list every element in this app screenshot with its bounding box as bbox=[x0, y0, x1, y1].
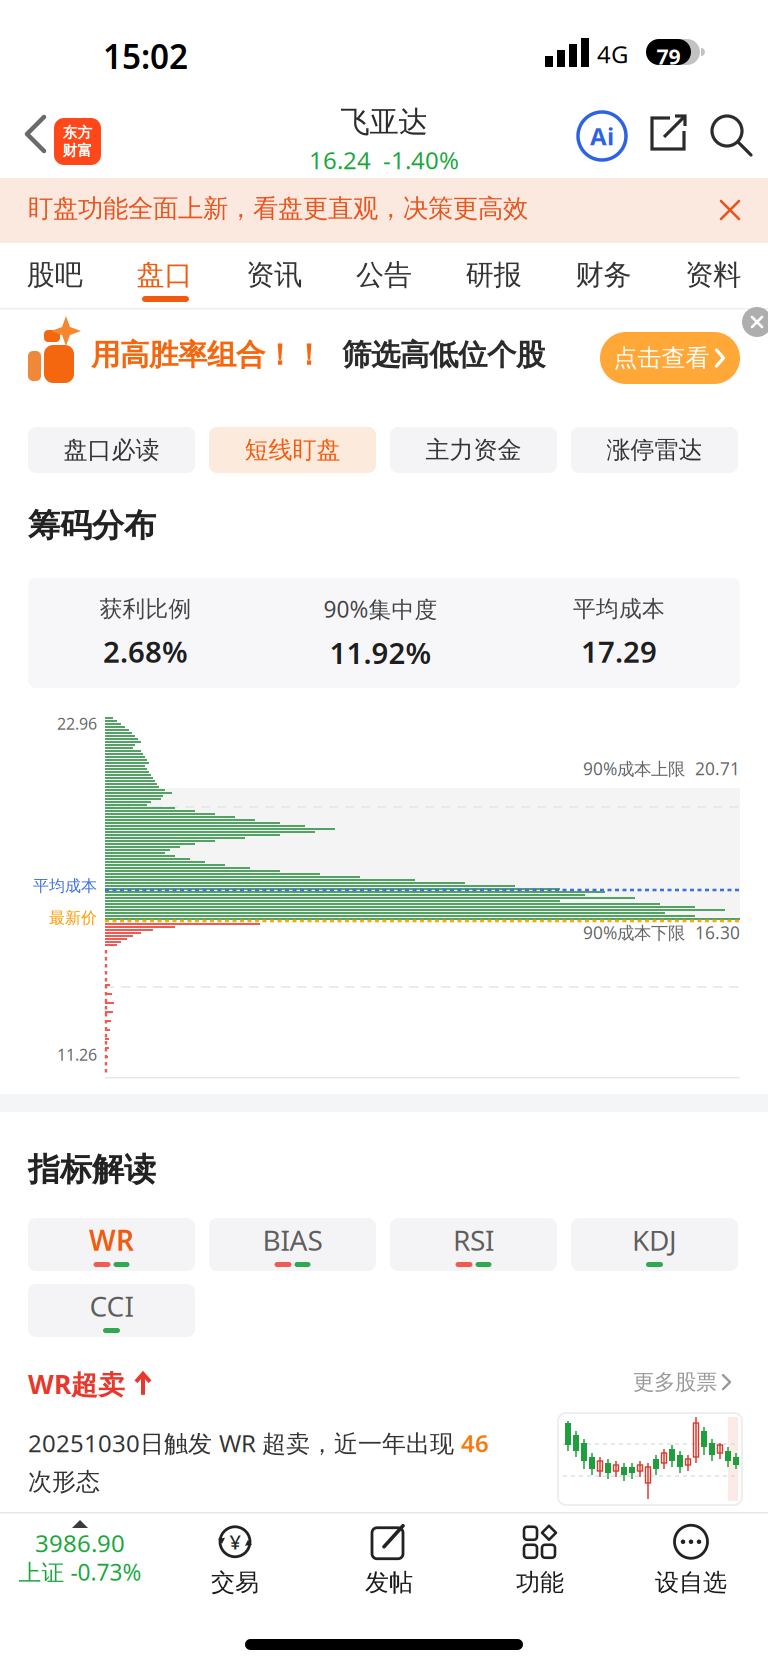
staticText: 公告 bbox=[356, 258, 412, 292]
staticText: 用高胜率组合！！ bbox=[91, 337, 323, 373]
button[interactable]: 更多股票 bbox=[633, 1369, 732, 1395]
button[interactable]: KDJ bbox=[571, 1218, 738, 1271]
staticText: 短线盯盘 bbox=[244, 435, 340, 465]
button[interactable]: 3986.90 bbox=[2, 1514, 158, 1596]
button[interactable]: 主力资金 bbox=[390, 427, 557, 473]
staticText: 11.26 bbox=[57, 1044, 97, 1065]
staticText: 飞亚达 bbox=[340, 104, 427, 140]
staticText: 点击查看 bbox=[613, 343, 709, 373]
staticText: 90%成本上限 20.71 bbox=[583, 757, 740, 780]
staticText: 79 bbox=[656, 42, 680, 70]
button[interactable]: 功能 bbox=[470, 1520, 610, 1602]
staticText: 指标解读 bbox=[28, 1150, 156, 1189]
staticText: KDJ bbox=[632, 1221, 677, 1259]
button[interactable]: WR bbox=[28, 1218, 195, 1271]
button[interactable]: 用高胜率组合！！ bbox=[0, 311, 768, 427]
staticText: 研报 bbox=[466, 258, 522, 292]
button[interactable]: 资料 bbox=[658, 247, 768, 303]
staticText: 17.29 bbox=[581, 632, 657, 671]
button[interactable]: BIAS bbox=[209, 1218, 376, 1271]
button[interactable]: ¥ bbox=[165, 1520, 305, 1602]
staticText: 设自选 bbox=[655, 1568, 727, 1597]
button[interactable]: CCI bbox=[28, 1284, 195, 1337]
button[interactable]: 涨停雷达 bbox=[571, 427, 738, 473]
staticText: 20251030日触发 WR 超卖，近一年出现 bbox=[28, 1427, 461, 1459]
staticText: CCI bbox=[89, 1287, 133, 1325]
staticText: RSI bbox=[453, 1221, 494, 1259]
staticText: 功能 bbox=[516, 1568, 564, 1597]
button[interactable]: 盘口 bbox=[110, 247, 219, 303]
staticText: 财富 bbox=[62, 141, 92, 159]
button[interactable]: RSI bbox=[390, 1218, 557, 1271]
staticText: 筹码分布 bbox=[28, 506, 156, 545]
button[interactable]: 点击查看 bbox=[600, 332, 740, 384]
button[interactable]: 短线盯盘 bbox=[209, 427, 376, 473]
staticText: 90%集中度 bbox=[323, 594, 437, 624]
button[interactable]: Dismiss banner bbox=[710, 190, 750, 230]
button[interactable]: 研报 bbox=[439, 247, 549, 303]
button[interactable]: 发帖 bbox=[319, 1520, 459, 1602]
button[interactable]: 公告 bbox=[329, 247, 439, 303]
staticText: WR超卖 bbox=[28, 1366, 125, 1402]
staticText: 涨停雷达 bbox=[606, 435, 702, 465]
staticText: 4G bbox=[597, 38, 628, 70]
staticText: 上证 -0.73% bbox=[18, 1557, 141, 1587]
staticText: 46 bbox=[461, 1427, 489, 1459]
staticText: 3986.90 bbox=[35, 1527, 125, 1559]
staticText: 财务 bbox=[575, 258, 631, 292]
staticText: 盘口必读 bbox=[63, 435, 159, 465]
staticText: 发帖 bbox=[365, 1568, 413, 1597]
staticText: 22.96 bbox=[57, 713, 97, 734]
staticText: 盘口 bbox=[137, 258, 193, 292]
button[interactable]: 财务 bbox=[549, 247, 658, 303]
staticText: ¥ bbox=[229, 1528, 240, 1555]
button[interactable]: 盯盘功能全面上新，看盘更直观，决策更高效 bbox=[0, 178, 768, 243]
staticText: 交易 bbox=[211, 1568, 259, 1597]
staticText: 股吧 bbox=[27, 258, 83, 292]
staticText: 资料 bbox=[685, 258, 741, 292]
staticText: 东方 bbox=[62, 123, 92, 141]
staticText: WR bbox=[89, 1221, 134, 1259]
staticText: Ai bbox=[590, 120, 614, 152]
staticText: 资讯 bbox=[246, 258, 302, 292]
button[interactable]: 东方财富 bbox=[54, 118, 101, 165]
staticText: 最新价 bbox=[49, 908, 97, 928]
button[interactable]: 资讯 bbox=[219, 247, 329, 303]
button[interactable]: Close ad bbox=[742, 307, 768, 337]
staticText: 主力资金 bbox=[425, 435, 521, 465]
staticText: BIAS bbox=[262, 1221, 322, 1259]
button[interactable]: Share bbox=[650, 116, 688, 152]
staticText: 获利比例 bbox=[99, 595, 191, 623]
staticText: 16.24 -1.40% bbox=[309, 144, 459, 176]
button[interactable]: Ai assistant bbox=[577, 111, 627, 161]
button[interactable]: 股吧 bbox=[0, 247, 110, 303]
staticText: 次形态 bbox=[28, 1467, 100, 1496]
button[interactable]: Back bbox=[20, 113, 60, 157]
staticText: 2.68% bbox=[103, 632, 188, 671]
staticText: 平均成本 bbox=[33, 876, 97, 896]
staticText: 11.92% bbox=[329, 633, 431, 672]
staticText: 15:02 bbox=[103, 34, 188, 78]
button[interactable]: 盘口必读 bbox=[28, 427, 195, 473]
staticText: 盯盘功能全面上新，看盘更直观，决策更高效 bbox=[28, 193, 528, 224]
staticText: 平均成本 bbox=[573, 595, 665, 623]
button[interactable]: 设自选 bbox=[621, 1520, 761, 1602]
staticText: 90%成本下限 16.30 bbox=[583, 921, 740, 944]
staticText: 更多股票 bbox=[633, 1369, 717, 1395]
button[interactable]: Search bbox=[711, 115, 753, 157]
staticText: 筛选高低位个股 bbox=[342, 337, 545, 373]
